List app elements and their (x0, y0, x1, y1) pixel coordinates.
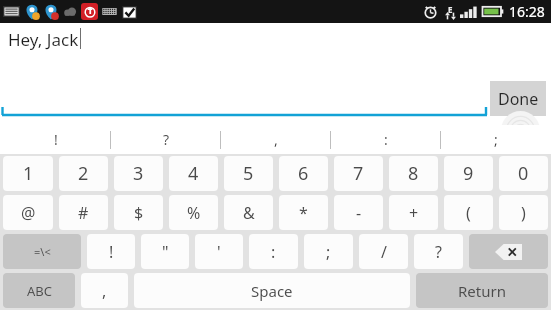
staticText: 7 (353, 161, 364, 186)
button[interactable]: - (334, 195, 383, 230)
staticText: ' (217, 241, 221, 263)
staticText: ! (54, 130, 58, 149)
button[interactable]: : (249, 234, 298, 269)
button[interactable]: Done (490, 81, 546, 116)
button[interactable]: Space (134, 273, 410, 308)
button[interactable]: ! (0, 125, 111, 154)
staticText: * (299, 202, 308, 224)
button[interactable]: ? (414, 234, 463, 269)
button[interactable]: 3 (114, 156, 163, 191)
button[interactable]: 4 (169, 156, 218, 191)
button[interactable]: Backspace (469, 234, 548, 269)
staticText: 2 (78, 161, 89, 186)
staticText: 3 (133, 161, 144, 186)
button[interactable]: & (224, 195, 273, 230)
button[interactable]: 0 (499, 156, 548, 191)
staticText: ; (326, 241, 331, 263)
staticText: + (409, 202, 419, 224)
button[interactable]: 5 (224, 156, 273, 191)
staticText: % (187, 202, 201, 224)
staticText: 16:28 (509, 2, 545, 21)
button[interactable]: * (279, 195, 328, 230)
button[interactable]: @ (3, 195, 53, 230)
staticText: Space (251, 281, 293, 301)
button[interactable]: Return (416, 273, 548, 308)
staticText: =\< (34, 244, 51, 259)
button[interactable]: ; (304, 234, 353, 269)
button[interactable]: , (221, 125, 331, 154)
button[interactable]: / (359, 234, 408, 269)
button[interactable]: 9 (444, 156, 493, 191)
staticText: @ (21, 202, 36, 224)
button[interactable]: 6 (279, 156, 328, 191)
staticText: & (243, 202, 255, 224)
staticText: 4 (188, 161, 199, 186)
button[interactable]: " (141, 234, 189, 269)
button[interactable]: ) (499, 195, 548, 230)
button[interactable]: 7 (334, 156, 383, 191)
button[interactable]: + (389, 195, 438, 230)
staticText: Return (458, 281, 506, 301)
button[interactable]: ABC (3, 273, 75, 308)
button[interactable]: =\< (3, 234, 81, 269)
staticText: Done (498, 88, 539, 110)
staticText: # (78, 202, 89, 224)
staticText: , (102, 280, 107, 302)
staticText: ? (435, 241, 442, 263)
staticText: 1 (23, 161, 34, 186)
button[interactable]: , (81, 273, 128, 308)
staticText: ! (109, 241, 114, 263)
button[interactable]: $ (114, 195, 163, 230)
staticText: : (384, 130, 388, 149)
button[interactable]: ? (111, 125, 221, 154)
staticText: 9 (463, 161, 474, 186)
staticText: ABC (27, 282, 52, 300)
staticText: ) (521, 202, 526, 224)
staticText: " (162, 241, 169, 263)
button[interactable]: % (169, 195, 218, 230)
staticText: $ (134, 202, 144, 224)
staticText: 6 (298, 161, 309, 186)
button[interactable]: 1 (3, 156, 53, 191)
staticText: E (448, 4, 453, 15)
staticText: 5 (243, 161, 254, 186)
button[interactable]: ! (87, 234, 135, 269)
button[interactable]: ( (444, 195, 493, 230)
button[interactable]: 8 (389, 156, 438, 191)
button[interactable]: : (331, 125, 441, 154)
staticText: 0 (518, 161, 529, 186)
staticText: 8 (408, 161, 419, 186)
button[interactable]: 2 (59, 156, 108, 191)
button[interactable]: ' (195, 234, 243, 269)
staticText: ( (466, 202, 471, 224)
staticText: , (274, 130, 278, 149)
staticText: ; (494, 130, 498, 149)
staticText: / (381, 241, 387, 263)
staticText: ? (163, 130, 170, 149)
staticText: : (271, 241, 276, 263)
button[interactable]: ; (441, 125, 551, 154)
staticText: - (356, 202, 362, 224)
staticText: Hey, Jack (8, 28, 79, 51)
button[interactable]: # (59, 195, 108, 230)
